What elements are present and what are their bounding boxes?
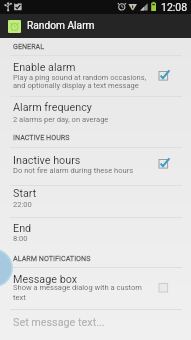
button[interactable]: Inactive hours <box>0 148 191 185</box>
staticText: End <box>13 222 32 235</box>
staticText: Play a ping sound at random occasions, <box>13 73 147 82</box>
staticText: Do not fire alarm during these hours <box>13 166 134 175</box>
button[interactable]: Set message text... <box>0 310 191 340</box>
staticText: and optionally display a text message <box>13 81 139 90</box>
staticText: ALARM NOTIFICATIONS <box>13 254 91 262</box>
button[interactable]: Start <box>0 186 191 217</box>
staticText: Enable alarm <box>13 61 76 74</box>
staticText: Message box <box>13 273 78 286</box>
staticText: INACTIVE HOURS <box>13 133 70 141</box>
staticText: 12:08 <box>161 1 188 13</box>
staticText: 2 alarms per day, on average <box>13 115 109 124</box>
staticText: 22:00 <box>13 200 32 209</box>
staticText: Show a message dialog with a custom <box>13 283 142 292</box>
staticText: Random Alarm <box>27 20 95 32</box>
staticText: 8:00 <box>13 234 28 243</box>
staticText: GENERAL <box>13 42 45 50</box>
staticText: Start <box>13 187 37 200</box>
staticText: text <box>13 293 26 302</box>
staticText: Set message text... <box>13 316 105 329</box>
button[interactable]: App icon <box>8 20 21 33</box>
staticText: Alarm frequency <box>13 101 92 114</box>
button[interactable]: Enable alarm <box>0 56 191 96</box>
button[interactable]: Alarm frequency <box>0 97 191 129</box>
staticText: Inactive hours <box>13 154 81 167</box>
button[interactable]: Message box <box>0 268 191 309</box>
button[interactable]: End <box>0 218 191 249</box>
